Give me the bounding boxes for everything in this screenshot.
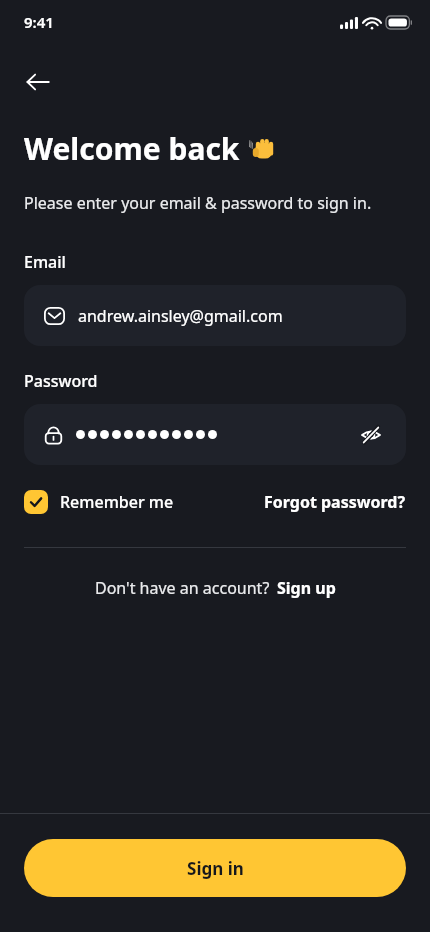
- staticText: Welcome back: [24, 128, 240, 169]
- button[interactable]: Sign in: [24, 839, 406, 897]
- staticText: 9:41: [24, 12, 54, 32]
- staticText: andrew.ainsley@gmail.com: [78, 305, 283, 327]
- button[interactable]: Don't have an account?: [0, 577, 430, 599]
- staticText: Don't have an account?: [95, 577, 270, 599]
- button[interactable]: Show password: [24, 404, 406, 465]
- staticText: Email: [24, 251, 66, 273]
- staticText: Forgot password?: [264, 491, 406, 513]
- button[interactable]: Remember me: [24, 490, 174, 514]
- button[interactable]: andrew.ainsley@gmail.com: [24, 285, 406, 346]
- staticText: Remember me: [60, 491, 174, 513]
- button[interactable]: Show password: [354, 418, 388, 452]
- staticText: Sign in: [187, 857, 244, 880]
- staticText: Please enter your email & password to si…: [24, 192, 372, 214]
- staticText: Sign up: [277, 577, 336, 599]
- button[interactable]: Forgot password?: [264, 491, 406, 513]
- button[interactable]: Back: [14, 58, 62, 106]
- staticText: Password: [24, 370, 98, 392]
